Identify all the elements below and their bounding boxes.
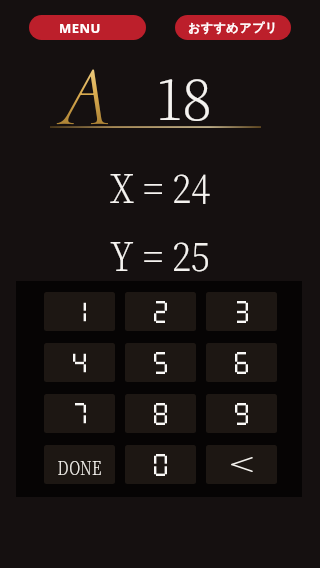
staticText: A xyxy=(60,45,111,148)
button[interactable] xyxy=(44,394,115,433)
button[interactable] xyxy=(125,343,196,382)
staticText: Y = 25 xyxy=(110,225,210,282)
button[interactable] xyxy=(206,343,277,382)
button[interactable]: MENU xyxy=(29,15,146,40)
button[interactable] xyxy=(44,292,115,331)
staticText: MENU xyxy=(59,19,101,37)
button[interactable]: DONE xyxy=(44,445,115,484)
button[interactable] xyxy=(44,343,115,382)
button[interactable] xyxy=(206,445,277,484)
button[interactable] xyxy=(206,394,277,433)
button[interactable] xyxy=(125,394,196,433)
button[interactable] xyxy=(125,445,196,484)
button[interactable] xyxy=(125,292,196,331)
staticText: DONE xyxy=(58,454,102,480)
button[interactable]: おすすめアプリ xyxy=(175,15,291,40)
staticText: 18 xyxy=(156,57,212,136)
staticText: おすすめアプリ xyxy=(188,20,278,35)
button[interactable] xyxy=(206,292,277,331)
staticText: X = 24 xyxy=(110,157,210,214)
